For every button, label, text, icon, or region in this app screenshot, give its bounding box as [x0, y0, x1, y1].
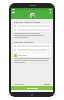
button[interactable]	[13, 28, 51, 32]
button[interactable]	[13, 48, 51, 52]
button[interactable]	[13, 44, 51, 48]
button[interactable]	[13, 24, 51, 28]
button[interactable]: Back	[12, 11, 15, 14]
button[interactable]: More options	[49, 11, 52, 14]
button[interactable]: Pick me	[13, 53, 51, 57]
button[interactable]	[11, 86, 53, 90]
staticText: Delivery location	[14, 40, 34, 43]
staticText: Delivery date and time	[14, 20, 41, 23]
staticText: Pick me	[18, 54, 27, 57]
